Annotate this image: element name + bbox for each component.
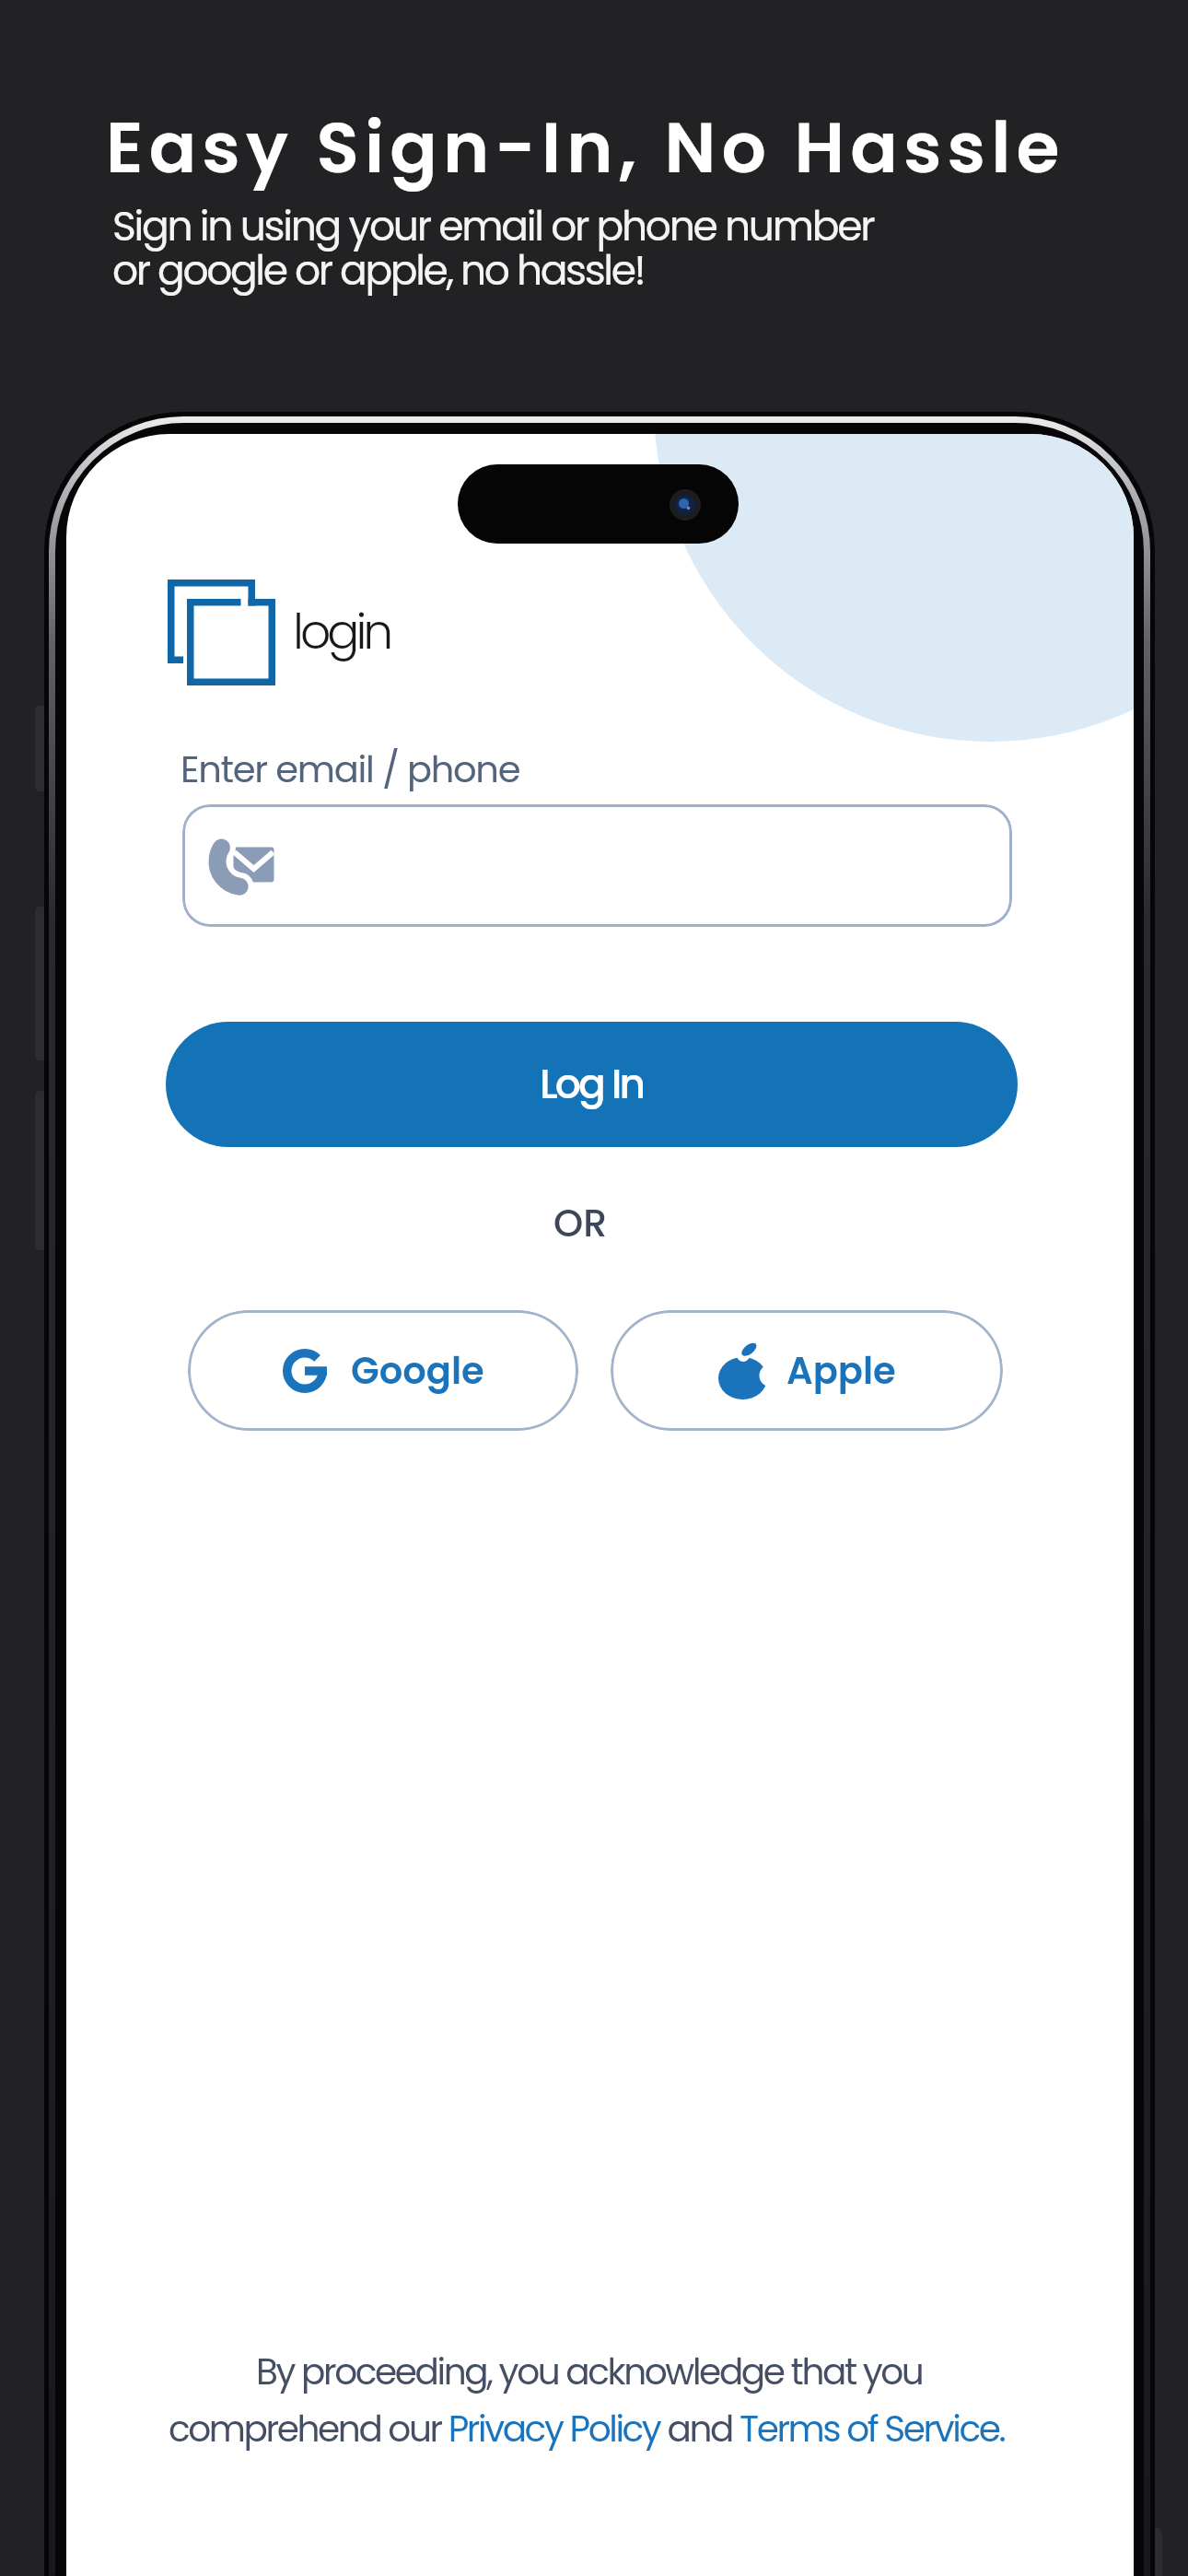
button[interactable]: Log In <box>166 1022 1018 1147</box>
staticText: Apple <box>786 1345 896 1397</box>
staticText: Google <box>351 1345 484 1397</box>
staticText: Log In <box>540 1056 644 1113</box>
staticText: Easy Sign-In, No Hassle <box>106 99 1066 196</box>
staticText: or google or apple, no hassle! <box>112 242 645 299</box>
staticText: Enter email / phone <box>181 744 520 795</box>
button[interactable]: comprehend our Privacy Policy and Terms … <box>169 2404 1005 2454</box>
staticText: login <box>293 598 390 665</box>
staticText: By proceeding, you acknowledge that you <box>256 2347 923 2397</box>
button[interactable]: Google <box>188 1310 578 1431</box>
button[interactable]: Apple <box>611 1310 1003 1431</box>
button[interactable] <box>182 804 1012 927</box>
staticText: Sign in using your email or phone number <box>112 198 874 255</box>
staticText: OR <box>553 1197 608 1249</box>
